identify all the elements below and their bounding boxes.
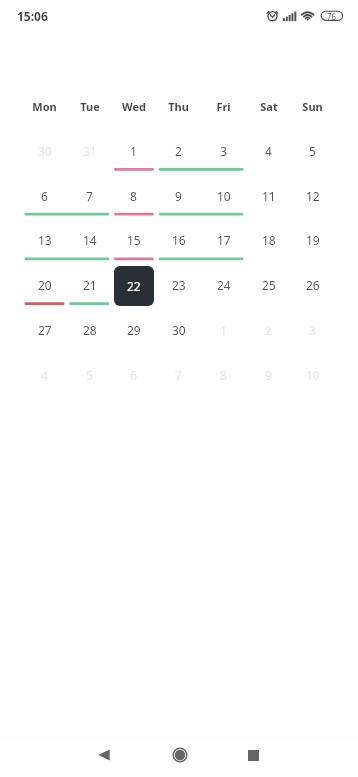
staticText: 13: [38, 232, 52, 248]
button[interactable]: 29: [111, 307, 156, 352]
button[interactable]: Back: [88, 739, 120, 771]
button[interactable]: 27: [22, 307, 67, 352]
staticText: 24: [217, 277, 231, 293]
staticText: 16: [172, 232, 186, 248]
button[interactable]: 8: [111, 173, 156, 218]
staticText: 11: [262, 188, 276, 204]
button[interactable]: 20: [22, 262, 67, 307]
staticText: 15:06: [17, 8, 48, 24]
staticText: 10: [306, 367, 320, 383]
button[interactable]: 4: [246, 128, 291, 173]
button[interactable]: 26: [290, 262, 335, 307]
staticText: 12: [306, 188, 320, 204]
button[interactable]: 24: [201, 262, 246, 307]
button[interactable]: 9: [156, 173, 201, 218]
button[interactable]: 28: [67, 307, 112, 352]
button[interactable]: 16: [156, 217, 201, 262]
staticText: 10: [217, 188, 231, 204]
staticText: 6: [130, 367, 137, 383]
staticText: 31: [83, 143, 97, 159]
staticText: 21: [83, 277, 97, 293]
button[interactable]: 2: [156, 128, 201, 173]
staticText: 29: [127, 322, 141, 338]
button[interactable]: 17: [201, 217, 246, 262]
staticText: 30: [172, 322, 186, 338]
staticText: 3: [220, 143, 227, 159]
staticText: 22: [127, 278, 141, 294]
staticText: 17: [217, 232, 231, 248]
staticText: Sat: [260, 99, 278, 114]
staticText: 15: [127, 232, 141, 248]
staticText: 2: [175, 143, 182, 159]
staticText: 20: [38, 277, 52, 293]
staticText: 27: [38, 322, 52, 338]
staticText: 4: [41, 367, 48, 383]
staticText: 9: [265, 367, 272, 383]
staticText: Wed: [122, 99, 146, 114]
staticText: 14: [83, 232, 97, 248]
button[interactable]: 15: [111, 217, 156, 262]
button[interactable]: 30: [22, 128, 67, 173]
button[interactable]: 13: [22, 217, 67, 262]
button[interactable]: 18: [246, 217, 291, 262]
staticText: 5: [86, 367, 93, 383]
button[interactable]: 6: [22, 173, 67, 218]
staticText: 7: [86, 188, 93, 204]
staticText: 18: [262, 232, 276, 248]
button[interactable]: 12: [290, 173, 335, 218]
staticText: Fri: [216, 99, 231, 114]
staticText: 28: [83, 322, 97, 338]
button[interactable]: 10: [201, 173, 246, 218]
staticText: 3: [309, 322, 316, 338]
button[interactable]: 14: [67, 217, 112, 262]
staticText: 9: [175, 188, 182, 204]
button[interactable]: 1: [111, 128, 156, 173]
button[interactable]: 30: [156, 307, 201, 352]
staticText: 1: [130, 143, 137, 159]
staticText: 76: [327, 11, 337, 22]
button[interactable]: 19: [290, 217, 335, 262]
staticText: 4: [265, 143, 272, 159]
staticText: 2: [265, 322, 272, 338]
staticText: 8: [130, 188, 137, 204]
staticText: 5: [309, 143, 316, 159]
staticText: 26: [306, 277, 320, 293]
staticText: Tue: [80, 99, 100, 114]
button[interactable]: 7: [67, 173, 112, 218]
staticText: 25: [262, 277, 276, 293]
staticText: 8: [220, 367, 227, 383]
button[interactable]: 5: [290, 128, 335, 173]
button[interactable]: 25: [246, 262, 291, 307]
button[interactable]: Home: [164, 739, 196, 771]
staticText: 30: [38, 143, 52, 159]
staticText: 6: [41, 188, 48, 204]
staticText: 7: [175, 367, 182, 383]
staticText: Mon: [32, 99, 57, 114]
staticText: Sun: [302, 99, 323, 114]
button[interactable]: 11: [246, 173, 291, 218]
button[interactable]: 22: [111, 262, 156, 307]
staticText: 19: [306, 232, 320, 248]
button[interactable]: 3: [201, 128, 246, 173]
button[interactable]: Recents: [237, 739, 269, 771]
staticText: 23: [172, 277, 186, 293]
button[interactable]: 23: [156, 262, 201, 307]
button[interactable]: 21: [67, 262, 112, 307]
staticText: Thu: [168, 99, 189, 114]
staticText: 1: [220, 322, 227, 338]
